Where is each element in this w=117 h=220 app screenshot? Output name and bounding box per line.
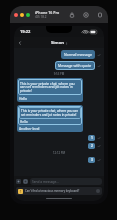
- other: Delivered: [97, 144, 101, 148]
- staticText: Simon: [51, 40, 64, 46]
- staticText: Message with quote: [58, 63, 92, 68]
- staticText: This is your private chat, where you can…: [20, 81, 80, 93]
- button[interactable]: This is your private chat, where you can…: [18, 79, 82, 101]
- button[interactable]: 1: [88, 135, 95, 141]
- button[interactable]: Zoom: [26, 13, 30, 17]
- staticText: 9:53 PM: [17, 72, 101, 76]
- staticText: iOS 18.2: [35, 15, 47, 19]
- staticText: 3: [91, 158, 93, 162]
- staticText: Hello: [19, 96, 27, 100]
- button[interactable]: Camera: [23, 179, 28, 184]
- button[interactable]: Send a message...: [32, 178, 100, 185]
- button[interactable]: Back: [14, 37, 26, 48]
- button[interactable]: Minimize: [20, 13, 24, 17]
- button[interactable]: Normal message: [64, 52, 92, 57]
- staticText: !: [20, 190, 21, 194]
- button[interactable]: !: [18, 187, 100, 195]
- button[interactable]: 2: [88, 143, 95, 149]
- button[interactable]: This is your private chat, where you can…: [18, 106, 82, 131]
- staticText: Hello: [20, 120, 28, 124]
- button[interactable]: Lock rotation: [68, 11, 76, 19]
- staticText: This is your private chat, where you can…: [21, 109, 79, 117]
- button[interactable]: Message with quote: [58, 63, 92, 68]
- staticText: Normal message: [64, 52, 92, 57]
- button[interactable]: Appearance: [82, 11, 90, 19]
- button[interactable]: Simon: [51, 40, 68, 46]
- button[interactable]: Close: [14, 13, 18, 17]
- staticText: 1: [91, 136, 93, 140]
- staticText: Another level: [19, 126, 40, 130]
- other: Dismiss: [96, 189, 100, 193]
- staticText: Send a message...: [32, 180, 59, 184]
- button[interactable]: More: [96, 11, 104, 19]
- staticText: 2: [91, 144, 93, 148]
- button[interactable]: Attach: [16, 179, 21, 184]
- staticText: Can't find a tenacious memory keyboard?: [25, 189, 96, 193]
- staticText: iPhone 16 Pro: [35, 10, 60, 15]
- other: Delivered: [97, 53, 101, 57]
- staticText: 12:12 PM: [17, 151, 101, 155]
- other: Delivered: [97, 158, 101, 162]
- button[interactable]: 3: [88, 157, 95, 163]
- other: Delivered: [97, 136, 101, 140]
- staticText: 19:22: [20, 29, 31, 34]
- other: Delivered: [97, 64, 101, 68]
